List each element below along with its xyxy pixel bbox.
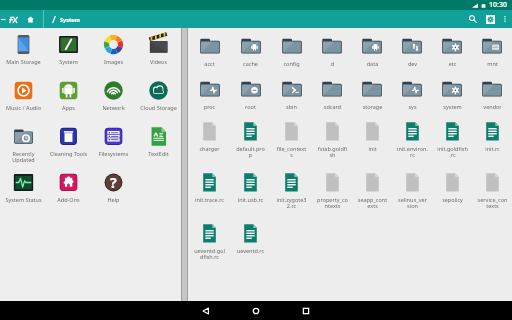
- button[interactable]: Filesystems: [91, 126, 136, 172]
- staticText: init.trace.rc: [194, 196, 225, 203]
- button[interactable]: Apps: [46, 80, 91, 126]
- staticText: cache: [234, 60, 267, 67]
- button[interactable]: vendor: [472, 78, 512, 121]
- staticText: sbin: [275, 103, 308, 110]
- button[interactable]: Recently Updated: [0, 126, 46, 172]
- staticText: init.zygote32.rc: [276, 196, 307, 210]
- button[interactable]: file_contexts: [271, 121, 312, 172]
- button[interactable]: init.rc: [472, 121, 512, 172]
- button[interactable]: Home: [231, 301, 281, 320]
- button[interactable]: service_contexts: [472, 172, 512, 223]
- button[interactable]: Navigate up: [0, 10, 6, 28]
- button[interactable]: init.environ.rc: [392, 121, 432, 172]
- button[interactable]: More options: [499, 10, 510, 28]
- button[interactable]: Cloud Storage: [136, 80, 181, 126]
- staticText: init: [357, 145, 388, 152]
- staticText: default.prop: [235, 145, 266, 159]
- button[interactable]: FX File Explorer: [7, 10, 19, 28]
- button[interactable]: System: [46, 34, 91, 80]
- button[interactable]: ueventd.rc: [230, 223, 271, 274]
- staticText: ueventd.rc: [235, 247, 266, 254]
- button[interactable]: Music / Audio: [0, 80, 46, 126]
- button[interactable]: root: [230, 78, 271, 121]
- staticText: etc: [436, 60, 469, 67]
- button[interactable]: data: [352, 35, 392, 78]
- button[interactable]: mnt: [472, 35, 512, 78]
- staticText: seapp_contexts: [357, 196, 388, 210]
- button[interactable]: init.goldfish.rc: [432, 121, 472, 172]
- staticText: acct: [193, 60, 226, 67]
- button[interactable]: ?: [91, 172, 136, 218]
- staticText: sepolicy: [437, 196, 468, 203]
- staticText: System Status: [3, 196, 44, 203]
- button[interactable]: seapp_contexts: [352, 172, 392, 223]
- button[interactable]: cache: [230, 35, 271, 78]
- staticText: Videos: [138, 58, 179, 65]
- button[interactable]: sbin: [271, 78, 312, 121]
- staticText: Add-Ons: [48, 196, 89, 203]
- button[interactable]: system: [432, 78, 472, 121]
- button[interactable]: etc: [432, 35, 472, 78]
- staticText: init.goldfish.rc: [437, 145, 468, 159]
- button[interactable]: System Status: [0, 172, 46, 218]
- button[interactable]: init.zygote32.rc: [271, 172, 312, 223]
- staticText: vendor: [476, 103, 509, 110]
- button[interactable]: init.usb.rc: [230, 172, 271, 223]
- button[interactable]: d: [312, 35, 352, 78]
- staticText: Music / Audio: [3, 104, 44, 111]
- button[interactable]: proc: [189, 78, 230, 121]
- staticText: init.rc: [477, 145, 508, 152]
- staticText: Cleaning Tools: [48, 150, 89, 157]
- button[interactable]: ueventd.goldfish.rc: [189, 223, 230, 274]
- button[interactable]: Add-Ons: [46, 172, 91, 218]
- button[interactable]: Videos: [136, 34, 181, 80]
- staticText: dev: [396, 60, 429, 67]
- staticText: Recently Updated: [3, 150, 44, 164]
- button[interactable]: Network: [91, 80, 136, 126]
- staticText: proc: [193, 103, 226, 110]
- button[interactable]: Settings: [481, 10, 499, 28]
- button[interactable]: config: [271, 35, 312, 78]
- button[interactable]: sdcard: [312, 78, 352, 121]
- button[interactable]: Search: [464, 10, 481, 28]
- button[interactable]: TextEdit: [136, 126, 181, 172]
- button[interactable]: fstab.goldfish: [312, 121, 352, 172]
- button[interactable]: acct: [189, 35, 230, 78]
- staticText: sdcard: [316, 103, 349, 110]
- button[interactable]: default.prop: [230, 121, 271, 172]
- button[interactable]: charger: [189, 121, 230, 172]
- staticText: Cloud Storage: [138, 104, 179, 111]
- staticText: Help: [93, 196, 134, 203]
- staticText: System: [60, 16, 80, 23]
- staticText: 10:30: [489, 0, 507, 10]
- button[interactable]: Cleaning Tools: [46, 126, 91, 172]
- staticText: ?: [110, 173, 117, 192]
- staticText: selinux_version: [397, 196, 428, 210]
- staticText: storage: [356, 103, 389, 110]
- button[interactable]: Images: [91, 34, 136, 80]
- staticText: file_contexts: [276, 145, 307, 159]
- button[interactable]: sys: [392, 78, 432, 121]
- button[interactable]: property_contexts: [312, 172, 352, 223]
- staticText: sys: [396, 103, 429, 110]
- staticText: data: [356, 60, 389, 67]
- staticText: init.usb.rc: [235, 196, 266, 203]
- button[interactable]: init.trace.rc: [189, 172, 230, 223]
- button[interactable]: Recent apps: [281, 301, 331, 320]
- staticText: Filesystems: [93, 150, 134, 157]
- button[interactable]: Home: [24, 10, 37, 28]
- staticText: ueventd.goldfish.rc: [194, 247, 225, 261]
- button[interactable]: init: [352, 121, 392, 172]
- button[interactable]: sepolicy: [432, 172, 472, 223]
- button[interactable]: System: [60, 10, 80, 28]
- button[interactable]: storage: [352, 78, 392, 121]
- staticText: root: [234, 103, 267, 110]
- staticText: Network: [93, 104, 134, 111]
- staticText: Apps: [48, 104, 89, 111]
- button[interactable]: dev: [392, 35, 432, 78]
- staticText: Images: [93, 58, 134, 65]
- button[interactable]: selinux_version: [392, 172, 432, 223]
- button[interactable]: Main Storage: [0, 34, 46, 80]
- button[interactable]: Back: [181, 301, 231, 320]
- staticText: service_contexts: [477, 196, 508, 210]
